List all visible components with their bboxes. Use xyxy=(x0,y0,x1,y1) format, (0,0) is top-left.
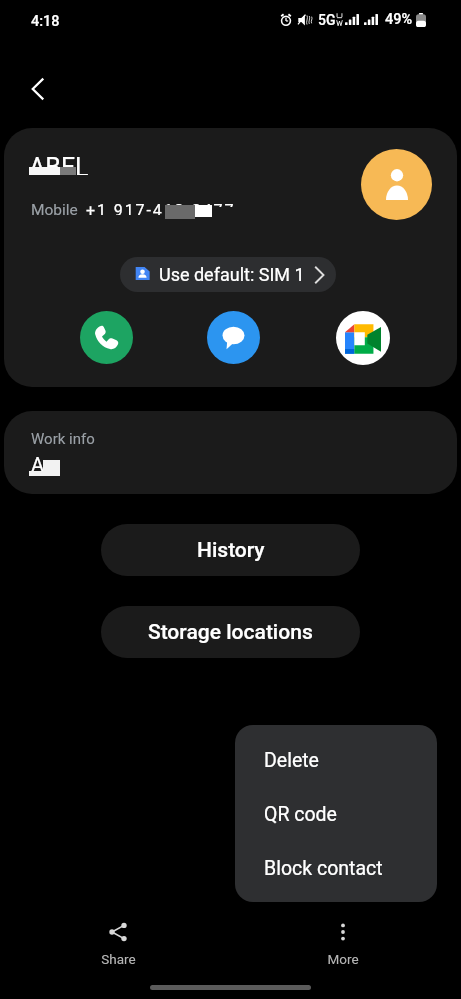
button[interactable]: More xyxy=(303,922,383,967)
button[interactable]: Message xyxy=(207,311,260,364)
button[interactable]: Contact photo xyxy=(361,149,432,220)
button[interactable]: Back xyxy=(16,67,60,111)
staticText: ABEL xyxy=(29,153,89,182)
button[interactable]: Call xyxy=(80,311,133,364)
staticText: QR code xyxy=(264,803,337,826)
button[interactable]: History xyxy=(101,524,360,576)
staticText: More xyxy=(327,951,359,967)
staticText: Use default: SIM 1 xyxy=(159,264,305,285)
button[interactable]: Share xyxy=(78,922,158,967)
button[interactable]: Storage locations xyxy=(101,606,360,658)
staticText: Share xyxy=(101,951,136,967)
staticText: 5G xyxy=(318,12,336,28)
staticText: Storage locations xyxy=(148,620,313,645)
staticText: Work info xyxy=(31,430,95,448)
staticText: Mobile xyxy=(31,201,78,219)
button[interactable]: Video call xyxy=(336,311,390,365)
button[interactable]: Delete xyxy=(235,733,437,787)
staticText: 4:18 xyxy=(31,13,60,30)
button[interactable]: QR code xyxy=(235,787,437,841)
button[interactable]: Block contact xyxy=(235,841,437,895)
button[interactable]: Work info xyxy=(4,411,457,494)
staticText: A xyxy=(31,453,45,476)
button[interactable]: Use default: SIM 1 xyxy=(120,257,336,292)
staticText: History xyxy=(197,538,265,563)
staticText: 49% xyxy=(385,11,413,28)
staticText: Delete xyxy=(264,749,319,772)
staticText: +1 917-412-3477 xyxy=(86,201,236,220)
staticText: Block contact xyxy=(264,857,383,880)
